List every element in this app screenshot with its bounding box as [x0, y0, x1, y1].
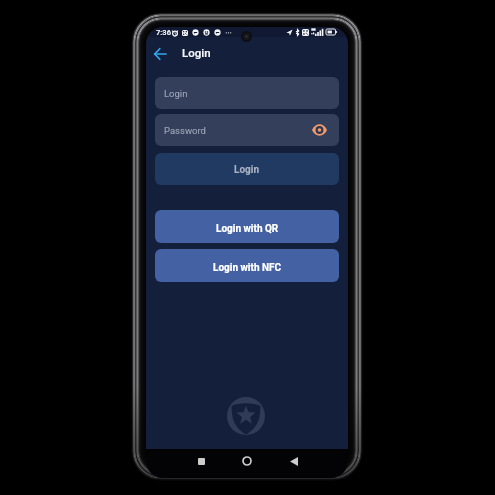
- staticText: Login: [182, 46, 211, 59]
- button[interactable]: Recents: [191, 451, 211, 471]
- button[interactable]: Password: [155, 114, 339, 146]
- button[interactable]: Back: [149, 43, 170, 64]
- button[interactable]: Login with QR: [155, 210, 339, 243]
- button[interactable]: Show password: [308, 119, 330, 141]
- staticText: Password: [164, 125, 206, 136]
- staticText: Login with QR: [216, 223, 279, 235]
- button[interactable]: Login: [155, 153, 339, 185]
- button[interactable]: Login with NFC: [155, 249, 339, 282]
- button[interactable]: Login: [155, 77, 339, 109]
- staticText: 7:36: [156, 28, 171, 37]
- staticText: Login: [234, 164, 260, 176]
- staticText: Login with NFC: [213, 262, 282, 274]
- button[interactable]: Home: [237, 451, 257, 471]
- staticText: Login: [164, 88, 188, 99]
- button[interactable]: Back: [284, 451, 304, 471]
